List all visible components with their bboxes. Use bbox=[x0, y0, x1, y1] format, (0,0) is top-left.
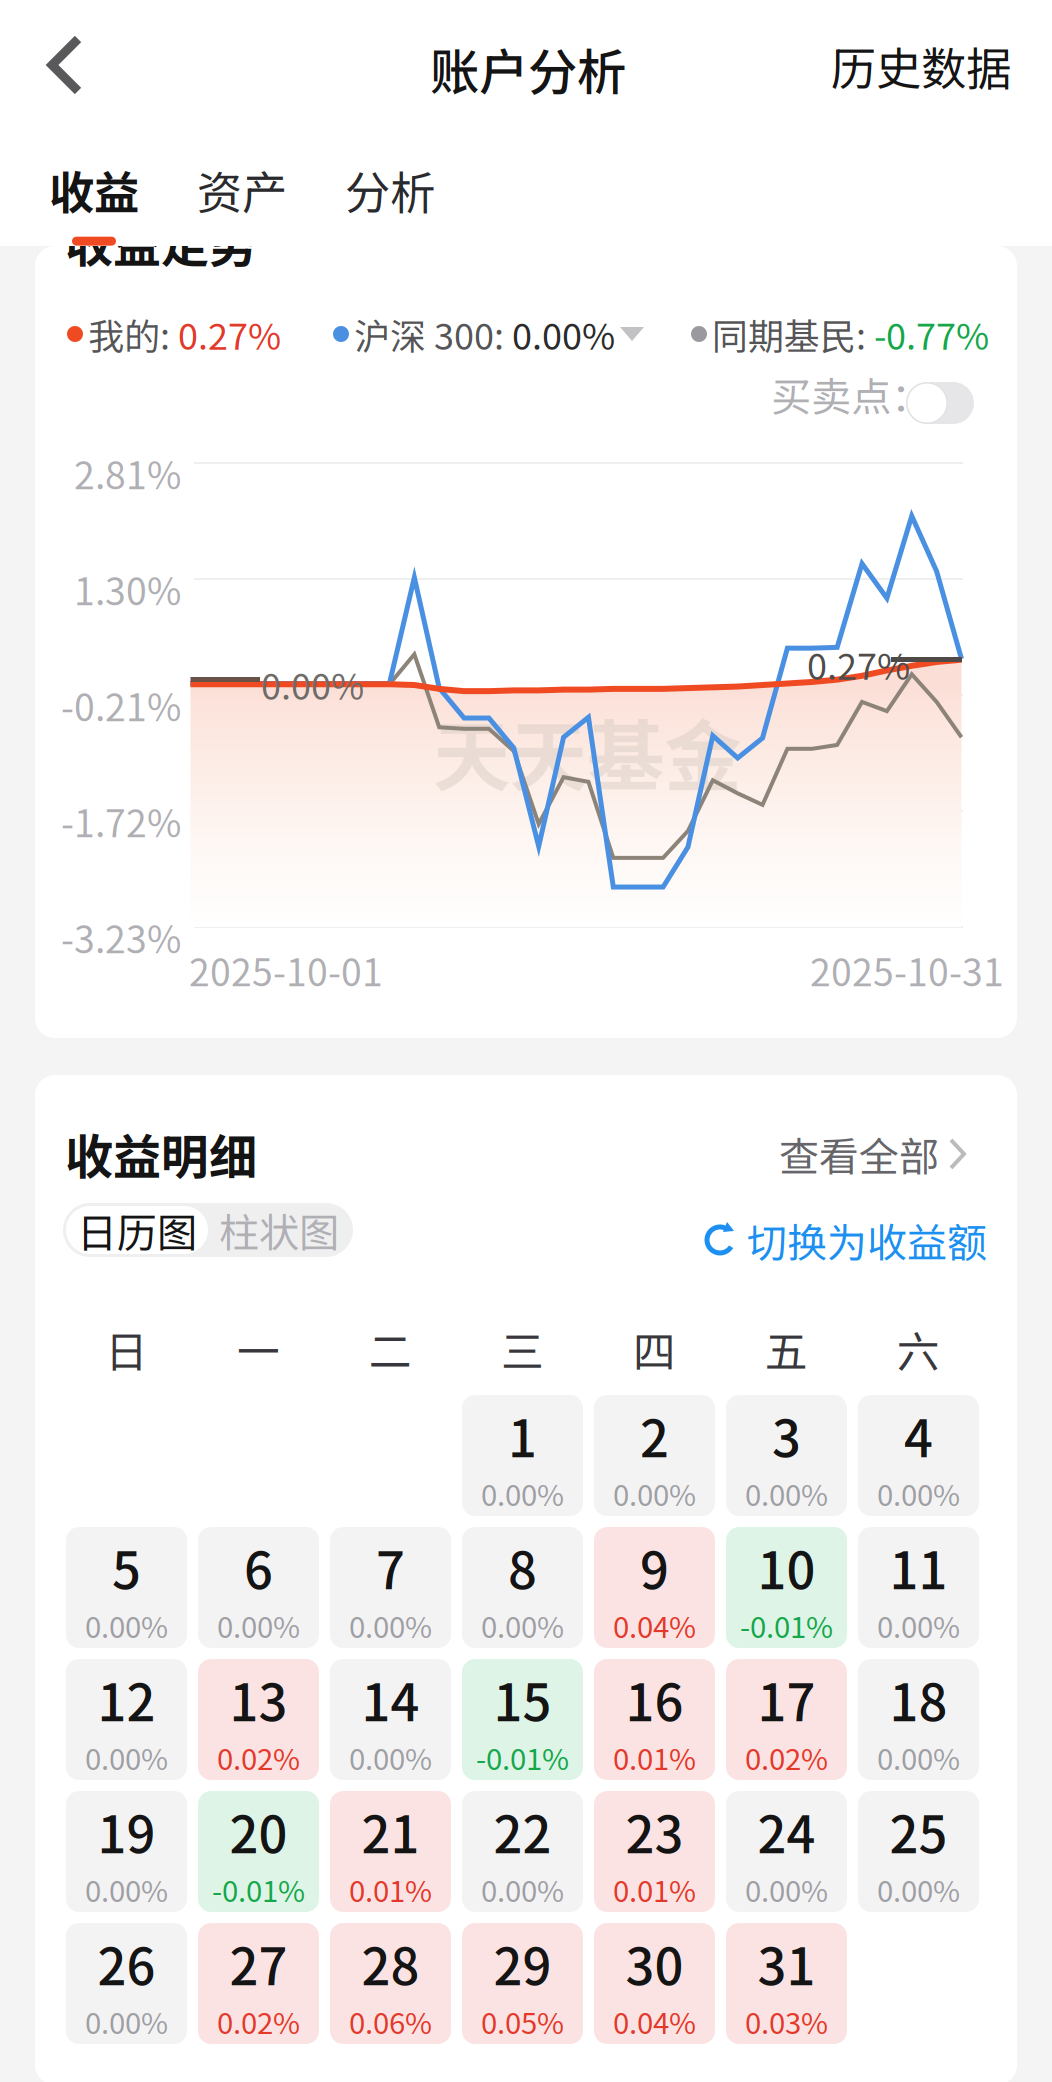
button[interactable]: 10 bbox=[726, 1527, 847, 1648]
staticText: 0.00% bbox=[877, 1604, 960, 1646]
staticText: 0.02% bbox=[217, 1736, 300, 1778]
button[interactable]: 1 bbox=[462, 1395, 583, 1516]
button[interactable]: 查看全部 bbox=[771, 1115, 975, 1193]
staticText: 账户分析 bbox=[430, 33, 626, 104]
staticText: 24 bbox=[757, 1795, 815, 1868]
staticText: 0.04% bbox=[613, 1604, 696, 1646]
button[interactable]: 26 bbox=[66, 1923, 187, 2044]
button[interactable]: 2 bbox=[594, 1395, 715, 1516]
staticText: 5 bbox=[112, 1531, 141, 1604]
button[interactable]: 20 bbox=[198, 1791, 319, 1912]
staticText: -0.01% bbox=[740, 1604, 833, 1646]
staticText: 日 bbox=[105, 1318, 148, 1380]
staticText: -3.23% bbox=[61, 910, 181, 964]
button[interactable]: 11 bbox=[858, 1527, 979, 1648]
staticText: 一 bbox=[237, 1318, 280, 1380]
button[interactable]: 返回 bbox=[16, 15, 116, 115]
staticText: 8 bbox=[508, 1531, 537, 1604]
staticText: 0.00% bbox=[85, 1868, 168, 1910]
button[interactable]: 收益 bbox=[49, 157, 139, 246]
staticText: 22 bbox=[493, 1795, 551, 1868]
button[interactable]: 8 bbox=[462, 1527, 583, 1648]
button[interactable]: 柱状图 bbox=[208, 1206, 350, 1254]
button[interactable]: 29 bbox=[462, 1923, 583, 2044]
button[interactable]: 4 bbox=[858, 1395, 979, 1516]
staticText: 31 bbox=[757, 1927, 815, 2000]
button[interactable]: 5 bbox=[66, 1527, 187, 1648]
button[interactable]: 19 bbox=[66, 1791, 187, 1912]
button[interactable]: 9 bbox=[594, 1527, 715, 1648]
staticText: 6 bbox=[244, 1531, 273, 1604]
button[interactable]: 日历图 bbox=[66, 1206, 208, 1254]
button[interactable]: 切换为收益额 bbox=[701, 1203, 987, 1277]
staticText: 0.00% bbox=[85, 1736, 168, 1778]
button[interactable]: 7 bbox=[330, 1527, 451, 1648]
staticText: 20 bbox=[229, 1795, 287, 1868]
staticText: 19 bbox=[97, 1795, 155, 1868]
staticText: 我的: bbox=[88, 308, 178, 360]
button[interactable]: 买卖点开关 bbox=[906, 382, 974, 424]
staticText: 10 bbox=[757, 1531, 815, 1604]
staticText: 资产 bbox=[197, 157, 287, 223]
staticText: 0.00% bbox=[877, 1736, 960, 1778]
staticText: 0.27% bbox=[807, 638, 910, 690]
staticText: 切换为收益额 bbox=[747, 1211, 987, 1269]
staticText: 0.27% bbox=[178, 308, 281, 360]
staticText: -1.72% bbox=[61, 794, 181, 848]
staticText: 0.00% bbox=[877, 1472, 960, 1514]
button[interactable]: 23 bbox=[594, 1791, 715, 1912]
button[interactable]: 30 bbox=[594, 1923, 715, 2044]
staticText: 买卖点： bbox=[771, 365, 931, 423]
staticText: 0.02% bbox=[745, 1736, 828, 1778]
staticText: 六 bbox=[897, 1318, 940, 1380]
button[interactable]: 资产 bbox=[197, 157, 287, 246]
button[interactable]: 27 bbox=[198, 1923, 319, 2044]
button[interactable]: 15 bbox=[462, 1659, 583, 1780]
staticText: 三 bbox=[501, 1318, 544, 1380]
staticText: 18 bbox=[889, 1663, 947, 1736]
staticText: 21 bbox=[361, 1795, 419, 1868]
staticText: 29 bbox=[493, 1927, 551, 2000]
button[interactable]: 25 bbox=[858, 1791, 979, 1912]
staticText: 四 bbox=[633, 1318, 676, 1380]
staticText: 日历图 bbox=[77, 1201, 197, 1259]
button[interactable]: 18 bbox=[858, 1659, 979, 1780]
staticText: 3 bbox=[772, 1399, 801, 1472]
staticText: 17 bbox=[757, 1663, 815, 1736]
staticText: 0.03% bbox=[745, 2000, 828, 2042]
staticText: 历史数据 bbox=[831, 33, 1011, 99]
staticText: 柱状图 bbox=[219, 1201, 339, 1259]
button[interactable]: 24 bbox=[726, 1791, 847, 1912]
button[interactable]: 13 bbox=[198, 1659, 319, 1780]
staticText: 30 bbox=[625, 1927, 683, 2000]
staticText: 13 bbox=[229, 1663, 287, 1736]
staticText: 28 bbox=[361, 1927, 419, 2000]
button[interactable]: 12 bbox=[66, 1659, 187, 1780]
staticText: 0.06% bbox=[349, 2000, 432, 2042]
staticText: 0.01% bbox=[349, 1868, 432, 1910]
staticText: 查看全部 bbox=[779, 1125, 939, 1183]
staticText: 9 bbox=[640, 1531, 669, 1604]
staticText: 26 bbox=[97, 1927, 155, 2000]
button[interactable]: 28 bbox=[330, 1923, 451, 2044]
staticText: -0.21% bbox=[61, 678, 181, 732]
button[interactable]: 16 bbox=[594, 1659, 715, 1780]
staticText: 2.81% bbox=[74, 446, 181, 500]
staticText: 23 bbox=[625, 1795, 683, 1868]
button[interactable]: 31 bbox=[726, 1923, 847, 2044]
staticText: 0.00% bbox=[481, 1472, 564, 1514]
button[interactable]: 历史数据 bbox=[807, 7, 1035, 125]
button[interactable]: 14 bbox=[330, 1659, 451, 1780]
staticText: 沪深 300: bbox=[354, 308, 512, 360]
button[interactable]: 分析 bbox=[345, 157, 435, 246]
button[interactable]: 22 bbox=[462, 1791, 583, 1912]
button[interactable]: 6 bbox=[198, 1527, 319, 1648]
staticText: 0.00% bbox=[349, 1604, 432, 1646]
button[interactable]: 3 bbox=[726, 1395, 847, 1516]
staticText: 0.00% bbox=[349, 1736, 432, 1778]
button[interactable]: 21 bbox=[330, 1791, 451, 1912]
button[interactable]: 17 bbox=[726, 1659, 847, 1780]
staticText: -0.01% bbox=[476, 1736, 569, 1778]
staticText: 五 bbox=[765, 1318, 808, 1380]
staticText: 天天基金 bbox=[433, 695, 741, 807]
